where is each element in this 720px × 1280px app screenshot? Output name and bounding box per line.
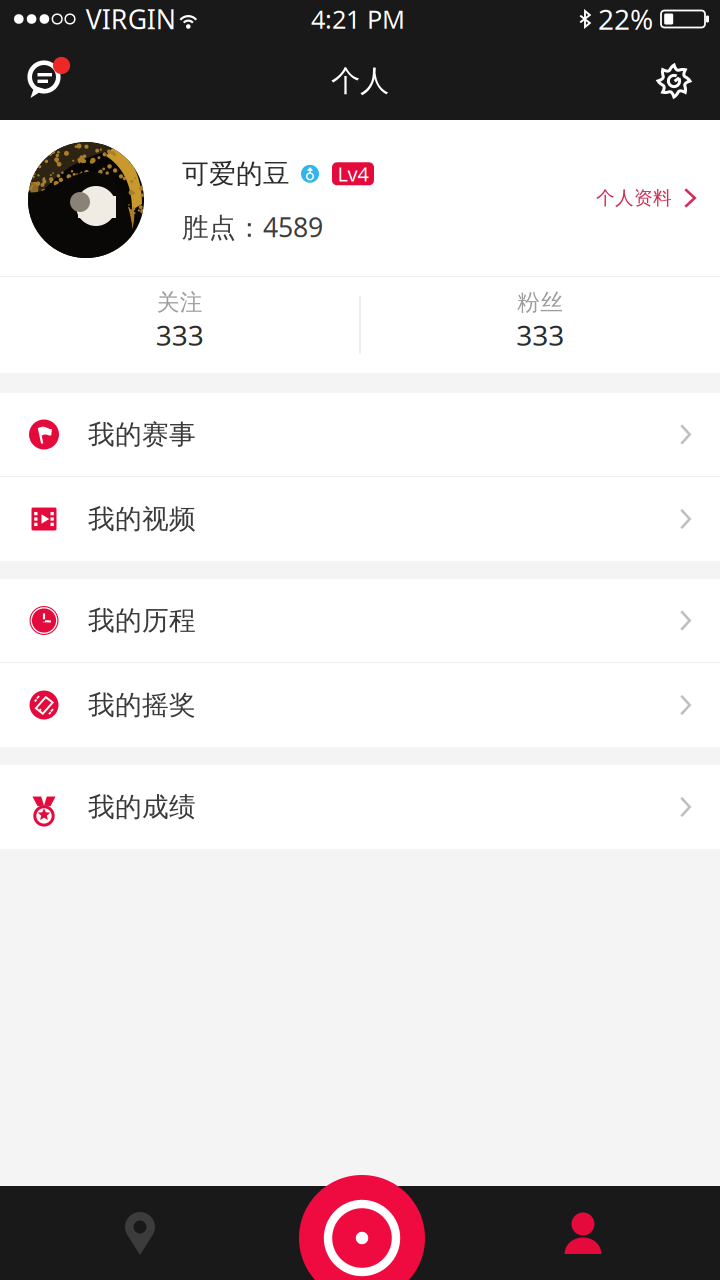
staticText: 关注 — [157, 288, 203, 316]
staticText: 我的历程 — [88, 604, 196, 637]
staticText: 粉丝 — [517, 288, 563, 316]
staticText: 333 — [516, 316, 564, 353]
button[interactable]: 我的摇奖 — [0, 663, 720, 747]
staticText: 可爱的豆 — [182, 157, 290, 190]
staticText: 22% — [598, 0, 653, 38]
button[interactable]: Record — [299, 1175, 425, 1280]
button[interactable]: Profile — [446, 1186, 720, 1280]
staticText: 我的赛事 — [88, 418, 196, 451]
button[interactable]: 我的赛事 — [0, 393, 720, 477]
staticText: 4:21 PM — [311, 2, 405, 36]
staticText: 胜点：4589 — [182, 209, 323, 245]
button[interactable]: Nearby — [0, 1186, 280, 1280]
button[interactable]: 我的视频 — [0, 477, 720, 561]
staticText: VIRGIN — [86, 1, 176, 37]
staticText: 我的视频 — [88, 503, 196, 535]
staticText: Lv4 — [337, 160, 368, 187]
staticText: 我的成绩 — [88, 791, 196, 823]
staticText: 个人 — [331, 63, 389, 99]
staticText: 个人资料 — [596, 186, 672, 209]
button[interactable]: Settings — [636, 59, 712, 103]
button[interactable]: Messages — [12, 59, 88, 103]
button[interactable]: 粉丝 — [360, 273, 720, 377]
staticText: 333 — [156, 316, 204, 353]
button[interactable]: 个人资料 — [572, 160, 720, 236]
button[interactable]: 我的成绩 — [0, 765, 720, 849]
button[interactable]: 关注 — [0, 273, 359, 377]
staticText: 我的摇奖 — [88, 689, 196, 721]
button[interactable]: 我的历程 — [0, 579, 720, 663]
